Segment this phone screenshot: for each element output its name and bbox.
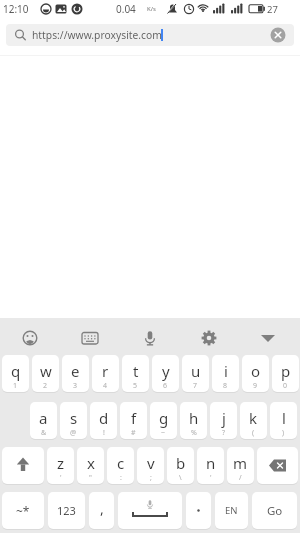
staticText: c <box>117 453 125 473</box>
staticText: 123 <box>57 503 76 518</box>
staticText: 6 <box>163 381 168 391</box>
staticText: s <box>70 408 78 428</box>
button[interactable] <box>195 324 223 352</box>
button[interactable]: h <box>180 402 207 439</box>
button[interactable]: a <box>30 402 57 439</box>
button[interactable]: k <box>240 402 267 439</box>
button[interactable]: m <box>227 447 254 484</box>
button[interactable] <box>76 324 104 352</box>
staticText: t <box>133 361 139 381</box>
staticText: / <box>239 473 242 483</box>
button[interactable]: p <box>272 355 299 392</box>
staticText: EN <box>225 504 238 517</box>
button[interactable]: , <box>89 492 114 529</box>
button[interactable]: l <box>270 402 297 439</box>
staticText: g <box>159 408 169 428</box>
staticText: 3 <box>73 381 78 391</box>
staticText: ? <box>222 428 226 438</box>
staticText: % <box>191 428 197 438</box>
staticText: n <box>206 453 216 473</box>
button[interactable]: z <box>47 447 74 484</box>
staticText: 0 <box>283 381 288 391</box>
staticText: & <box>41 428 47 438</box>
button[interactable] <box>2 447 44 484</box>
staticText: https://www.proxysite.com <box>32 28 162 42</box>
staticText: 27 <box>267 3 278 16</box>
staticText: v <box>147 453 155 473</box>
staticText: z <box>57 453 65 473</box>
button[interactable]: c <box>107 447 134 484</box>
button[interactable]: 123 <box>48 492 85 529</box>
staticText: i <box>224 361 228 381</box>
staticText: k <box>249 408 258 428</box>
button[interactable]: v <box>137 447 164 484</box>
staticText: # <box>131 428 136 438</box>
staticText: ' <box>60 473 62 483</box>
button[interactable]: s <box>60 402 87 439</box>
staticText: 8 <box>223 381 228 391</box>
button[interactable]: e <box>62 355 89 392</box>
staticText: f <box>131 408 137 428</box>
button[interactable]: r <box>92 355 119 392</box>
button[interactable]: o <box>242 355 269 392</box>
staticText: : <box>120 473 122 483</box>
staticText: 0.04 <box>116 2 136 16</box>
button[interactable] <box>16 324 44 352</box>
button[interactable]: Go <box>252 492 297 529</box>
button[interactable]: b <box>167 447 194 484</box>
staticText: w <box>40 361 52 381</box>
button[interactable] <box>186 492 211 529</box>
staticText: u <box>191 361 201 381</box>
staticText: ~* <box>16 503 30 519</box>
staticText: ~ <box>161 428 166 438</box>
staticText: ) <box>282 428 285 438</box>
staticText: \ <box>179 473 182 483</box>
staticText: , <box>100 499 104 518</box>
staticText: 12:10 <box>3 2 29 16</box>
button[interactable]: q <box>2 355 29 392</box>
staticText: ' <box>210 473 212 483</box>
staticText: q <box>11 361 21 381</box>
staticText: ( <box>252 428 255 438</box>
staticText: e <box>71 361 80 381</box>
button[interactable]: w <box>32 355 59 392</box>
staticText: r <box>102 361 109 381</box>
button[interactable]: t <box>122 355 149 392</box>
button[interactable]: f <box>120 402 147 439</box>
button[interactable] <box>118 492 182 529</box>
staticText: 1 <box>13 381 18 391</box>
button[interactable]: u <box>182 355 209 392</box>
staticText: o <box>251 361 261 381</box>
button[interactable]: https://www.proxysite.com <box>6 24 294 46</box>
staticText: x <box>87 453 95 473</box>
button[interactable] <box>254 324 282 352</box>
button[interactable]: y <box>152 355 179 392</box>
button[interactable]: g <box>150 402 177 439</box>
staticText: ! <box>103 428 105 438</box>
button[interactable]: j <box>210 402 237 439</box>
staticText: 9 <box>253 381 258 391</box>
button[interactable]: i <box>212 355 239 392</box>
staticText: y <box>162 361 170 381</box>
button[interactable]: n <box>197 447 224 484</box>
button[interactable]: d <box>90 402 117 439</box>
staticText: b <box>176 453 186 473</box>
staticText: ; <box>150 473 152 483</box>
staticText: m <box>233 453 248 473</box>
staticText: " <box>89 473 92 483</box>
staticText: l <box>282 408 286 428</box>
button[interactable] <box>136 324 164 352</box>
staticText: j <box>222 408 226 428</box>
button[interactable] <box>257 447 298 484</box>
button[interactable]: ~* <box>2 492 44 529</box>
staticText: p <box>281 361 291 381</box>
staticText: d <box>99 408 109 428</box>
staticText: 4 <box>103 381 108 391</box>
staticText: 5 <box>133 381 138 391</box>
staticText: a <box>39 408 48 428</box>
button[interactable]: x <box>77 447 104 484</box>
staticText: @ <box>70 428 77 438</box>
button[interactable]: EN <box>215 492 248 529</box>
staticText: 2 <box>43 381 48 391</box>
button[interactable] <box>269 26 287 44</box>
